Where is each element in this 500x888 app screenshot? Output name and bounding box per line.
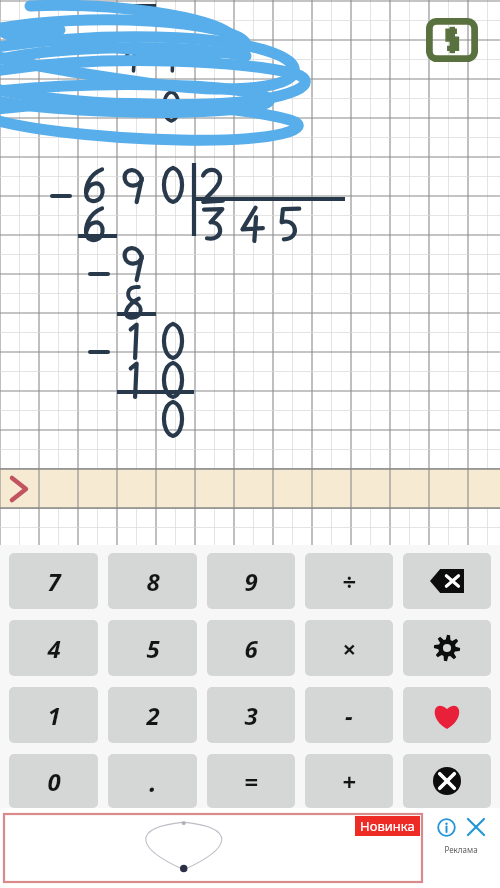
staticText: 1 bbox=[47, 699, 61, 732]
button[interactable]: . bbox=[108, 754, 197, 808]
staticText: 4 bbox=[47, 632, 61, 665]
button[interactable]: 5 bbox=[108, 620, 197, 676]
button[interactable]: Settings bbox=[403, 620, 491, 676]
button[interactable]: 7 bbox=[9, 553, 98, 609]
button[interactable]: ÷ bbox=[305, 553, 393, 609]
button[interactable]: 2 bbox=[108, 687, 197, 743]
staticText: 5 bbox=[146, 632, 160, 665]
staticText: = bbox=[244, 765, 258, 798]
button[interactable]: Favorite bbox=[403, 687, 491, 743]
staticText: 6 bbox=[244, 632, 258, 665]
staticText: Новинка bbox=[360, 817, 415, 835]
staticText: 7 bbox=[47, 565, 61, 598]
staticText: 0 bbox=[47, 765, 61, 798]
button[interactable]: 3 bbox=[207, 687, 295, 743]
staticText: 3 bbox=[244, 699, 258, 732]
button[interactable]: − bbox=[305, 687, 393, 743]
button[interactable]: Remove ads bbox=[424, 12, 480, 68]
staticText: × bbox=[342, 632, 356, 665]
staticText: Реклама bbox=[444, 844, 478, 855]
button[interactable]: 8 bbox=[108, 553, 197, 609]
button[interactable]: 6 bbox=[207, 620, 295, 676]
button[interactable]: 9 bbox=[207, 553, 295, 609]
button[interactable]: Advertisement bbox=[4, 814, 422, 882]
staticText: + bbox=[342, 765, 356, 798]
button[interactable]: Close ad bbox=[465, 816, 487, 838]
staticText: ÷ bbox=[342, 565, 356, 598]
button[interactable]: 0 bbox=[9, 754, 98, 808]
staticText: 8 bbox=[146, 565, 160, 598]
button[interactable]: × bbox=[305, 620, 393, 676]
button[interactable]: 4 bbox=[9, 620, 98, 676]
staticText: . bbox=[149, 764, 157, 799]
button[interactable]: Close bbox=[403, 754, 491, 808]
button[interactable]: + bbox=[305, 754, 393, 808]
button[interactable]: Ad info bbox=[435, 816, 457, 838]
staticText: 2 bbox=[146, 699, 160, 732]
button[interactable]: Backspace bbox=[403, 553, 491, 609]
staticText: − bbox=[345, 699, 353, 732]
button[interactable]: = bbox=[207, 754, 295, 808]
button[interactable]: 1 bbox=[9, 687, 98, 743]
staticText: 9 bbox=[244, 565, 258, 598]
